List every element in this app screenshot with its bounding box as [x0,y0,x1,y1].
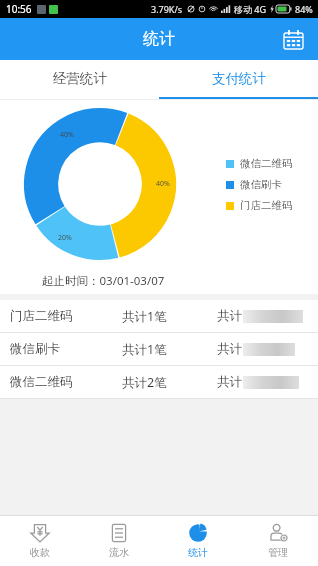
button[interactable]: 流水 [79,516,158,566]
staticText: 共计1笔 [122,341,167,358]
staticText: 门店二维码 [240,199,293,212]
staticText: 统计 [143,29,175,49]
staticText: 微信刷卡 [10,341,60,357]
staticText: 共计 [217,374,242,390]
button[interactable]: 统计 [158,516,238,566]
staticText: 起止时间：03/01-03/07 [42,273,165,289]
staticText: 3.79K/s [151,3,183,15]
button[interactable]: 经营统计 [0,60,159,97]
button[interactable]: 收款 [0,516,79,566]
staticText: 40% [60,130,74,140]
button[interactable]: 微信二维码 [0,366,318,398]
staticText: 10:56 [6,2,32,16]
staticText: 统计 [188,546,208,559]
staticText: 支付统计 [212,70,266,87]
staticText: 微信刷卡 [240,178,282,191]
staticText: 共计1笔 [122,308,167,325]
button[interactable]: 门店二维码 [0,300,318,332]
staticText: 共计 [217,308,242,324]
staticText: 经营统计 [53,70,107,87]
button[interactable]: 微信刷卡 [0,333,318,365]
staticText: 流水 [109,546,129,559]
staticText: 共计2笔 [122,374,167,391]
staticText: 84% [295,3,313,15]
staticText: 微信二维码 [240,157,293,170]
staticText: 收款 [30,546,50,559]
staticText: 移动 4G [234,3,267,15]
button[interactable]: 支付统计 [159,60,318,97]
staticText: 微信二维码 [10,374,73,390]
staticText: 共计 [217,341,242,357]
button[interactable]: Select date range [278,24,308,54]
staticText: 门店二维码 [10,308,73,324]
staticText: 管理 [268,546,288,559]
staticText: 20% [58,233,72,243]
button[interactable]: 管理 [238,516,318,566]
staticText: 40% [156,179,170,189]
